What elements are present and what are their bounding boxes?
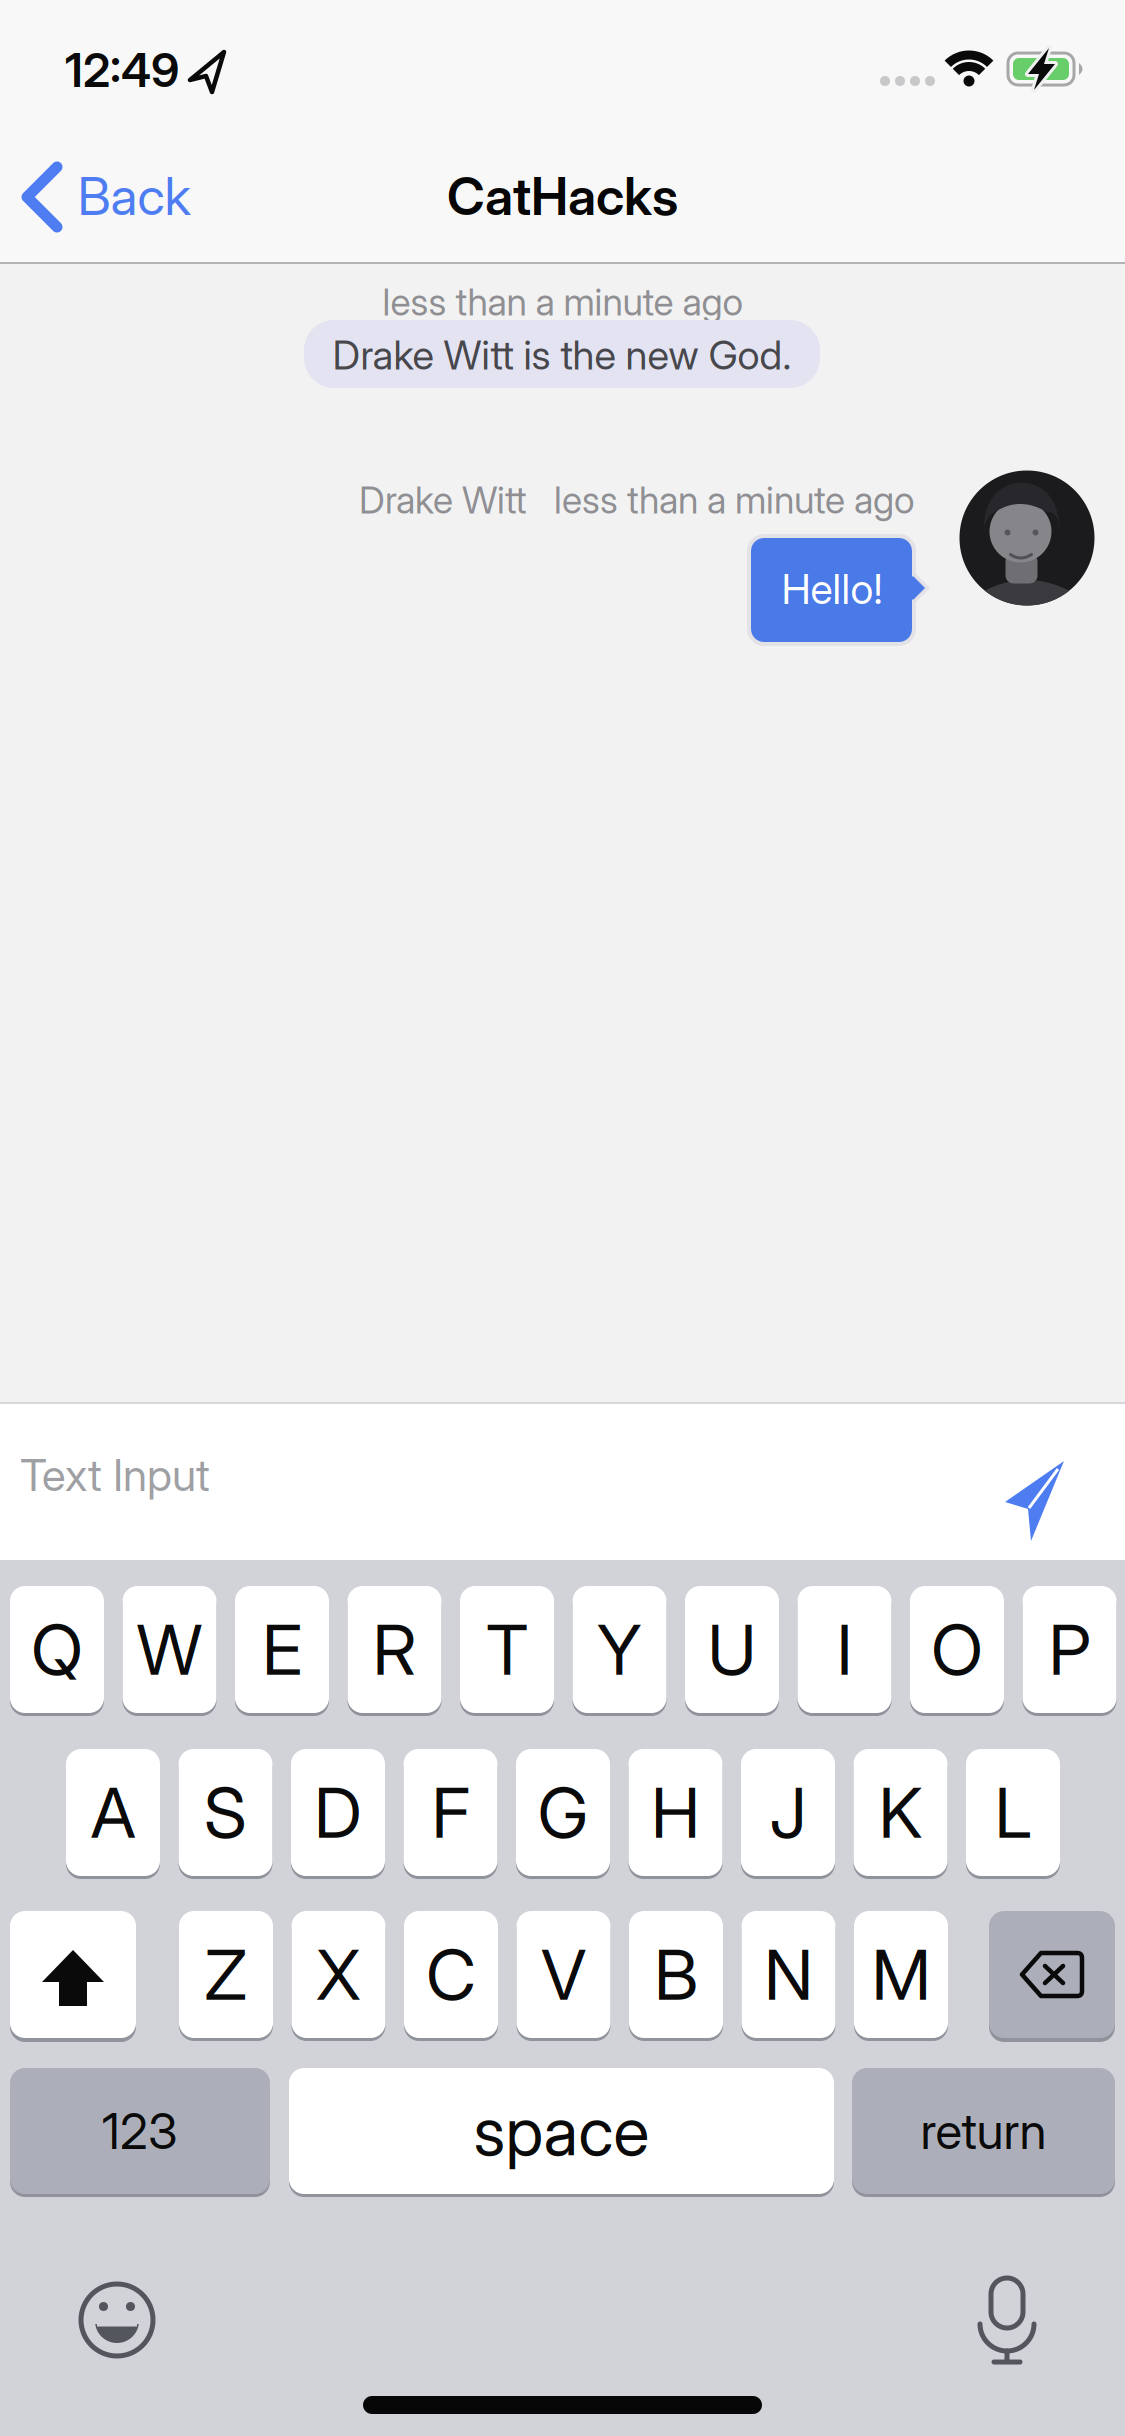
- button[interactable]: G: [516, 1749, 610, 1880]
- staticText: Y: [597, 1609, 642, 1690]
- staticText: L: [994, 1772, 1031, 1853]
- button[interactable]: U: [685, 1586, 779, 1717]
- staticText: 123: [102, 2102, 178, 2160]
- staticText: W: [136, 1609, 202, 1690]
- button[interactable]: P: [1022, 1586, 1116, 1717]
- staticText: K: [878, 1772, 922, 1853]
- staticText: A: [90, 1772, 135, 1853]
- staticText: 12:49: [65, 42, 179, 98]
- staticText: V: [541, 1934, 586, 2015]
- button[interactable]: B: [629, 1911, 723, 2042]
- staticText: return: [920, 2102, 1046, 2160]
- button[interactable]: Y: [572, 1586, 666, 1717]
- button[interactable]: Text Input: [20, 1435, 1125, 1515]
- staticText: M: [871, 1934, 930, 2015]
- button[interactable]: Q: [10, 1586, 104, 1717]
- button[interactable]: space: [289, 2068, 834, 2198]
- button[interactable]: return: [852, 2068, 1115, 2198]
- staticText: T: [486, 1609, 528, 1690]
- staticText: less than a minute ago: [382, 280, 742, 324]
- staticText: O: [931, 1609, 983, 1690]
- button[interactable]: N: [741, 1911, 835, 2042]
- staticText: E: [262, 1609, 302, 1690]
- button[interactable]: C: [404, 1911, 498, 2042]
- button[interactable]: F: [403, 1749, 497, 1880]
- staticText: Back: [77, 165, 190, 227]
- button[interactable]: W: [122, 1586, 216, 1717]
- staticText: Z: [204, 1934, 247, 2015]
- button[interactable]: O: [910, 1586, 1004, 1717]
- button[interactable]: Z: [179, 1911, 273, 2042]
- staticText: P: [1048, 1609, 1090, 1690]
- staticText: Drake Witt is the new God.: [332, 331, 791, 379]
- staticText: N: [764, 1934, 813, 2015]
- button[interactable]: [10, 1911, 136, 2042]
- button[interactable]: R: [347, 1586, 441, 1717]
- staticText: H: [651, 1772, 700, 1853]
- button[interactable]: K: [853, 1749, 947, 1880]
- staticText: R: [372, 1609, 416, 1690]
- button[interactable]: H: [628, 1749, 722, 1880]
- staticText: I: [836, 1609, 852, 1690]
- button[interactable]: A: [66, 1749, 160, 1880]
- button[interactable]: [989, 1911, 1115, 2042]
- staticText: B: [654, 1934, 698, 2015]
- staticText: S: [204, 1772, 247, 1853]
- staticText: Text Input: [20, 1449, 210, 1501]
- staticText: J: [769, 1772, 806, 1853]
- button[interactable]: Back: [0, 0, 1125, 2436]
- button[interactable]: J: [741, 1749, 835, 1880]
- staticText: U: [707, 1609, 756, 1690]
- button[interactable]: [0, 0, 1125, 2436]
- staticText: D: [314, 1772, 362, 1853]
- button[interactable]: [967, 2276, 1047, 2368]
- button[interactable]: I: [797, 1586, 891, 1717]
- button[interactable]: 123: [10, 2068, 270, 2198]
- button[interactable]: [77, 2280, 157, 2360]
- button[interactable]: L: [966, 1749, 1060, 1880]
- button[interactable]: X: [291, 1911, 385, 2042]
- staticText: C: [426, 1934, 476, 2015]
- staticText: Drake Witt: [359, 478, 527, 522]
- staticText: CatHacks: [447, 165, 678, 227]
- staticText: less than a minute ago: [554, 478, 914, 522]
- staticText: Q: [31, 1609, 83, 1690]
- button[interactable]: M: [854, 1911, 948, 2042]
- staticText: Hello!: [781, 565, 882, 613]
- button[interactable]: T: [460, 1586, 554, 1717]
- button[interactable]: D: [291, 1749, 385, 1880]
- button[interactable]: S: [178, 1749, 272, 1880]
- button[interactable]: E: [235, 1586, 329, 1717]
- staticText: X: [316, 1934, 361, 2015]
- staticText: space: [473, 2092, 649, 2170]
- button[interactable]: V: [516, 1911, 610, 2042]
- staticText: F: [431, 1772, 469, 1853]
- staticText: G: [537, 1772, 588, 1853]
